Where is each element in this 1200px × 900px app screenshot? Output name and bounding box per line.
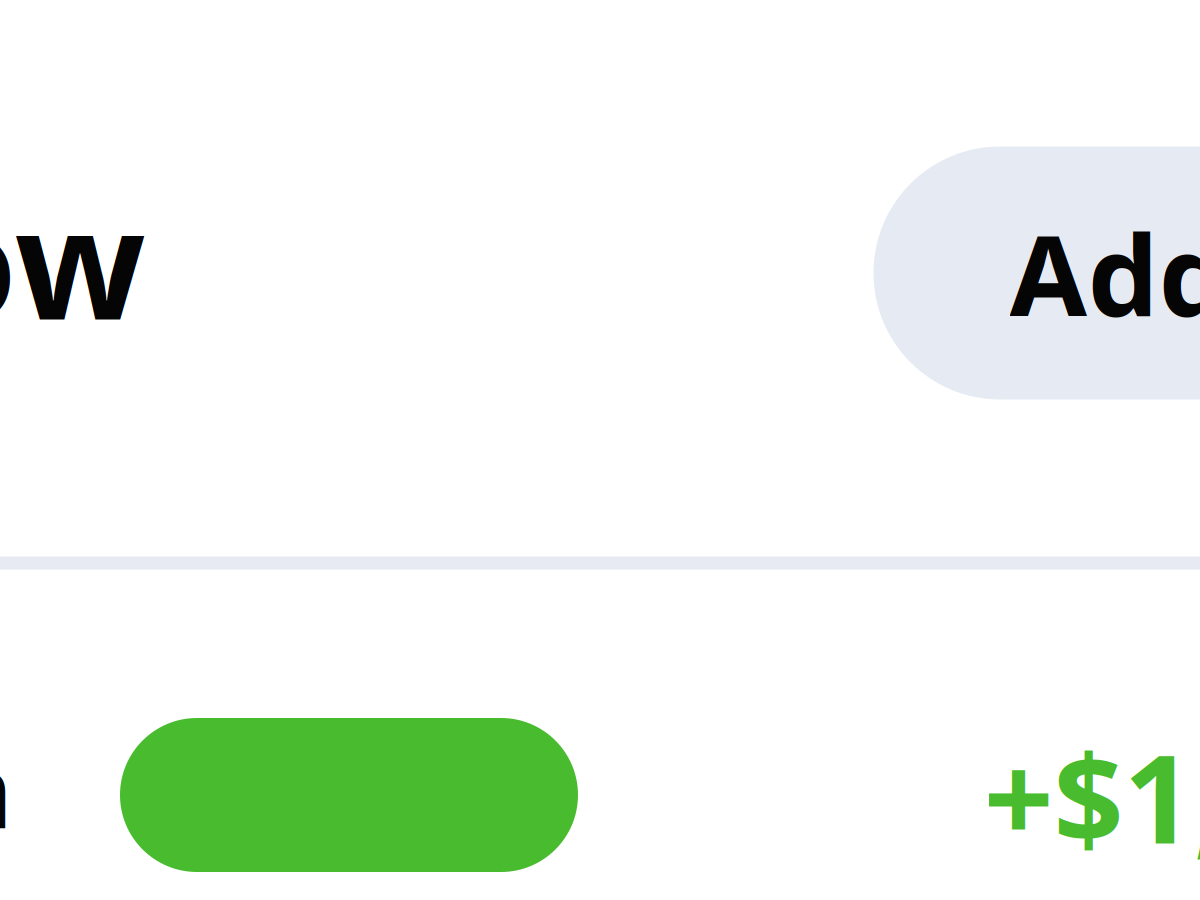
staticText: Add Cash bbox=[1009, 199, 1200, 347]
button[interactable]: Spotify Premium bbox=[0, 0, 1200, 900]
staticText: Cash flow bbox=[0, 158, 145, 362]
staticText: Spotify Premium bbox=[0, 722, 12, 856]
staticText: +$1,250 bbox=[983, 715, 1200, 877]
button[interactable]: Add Cash bbox=[873, 146, 1200, 399]
